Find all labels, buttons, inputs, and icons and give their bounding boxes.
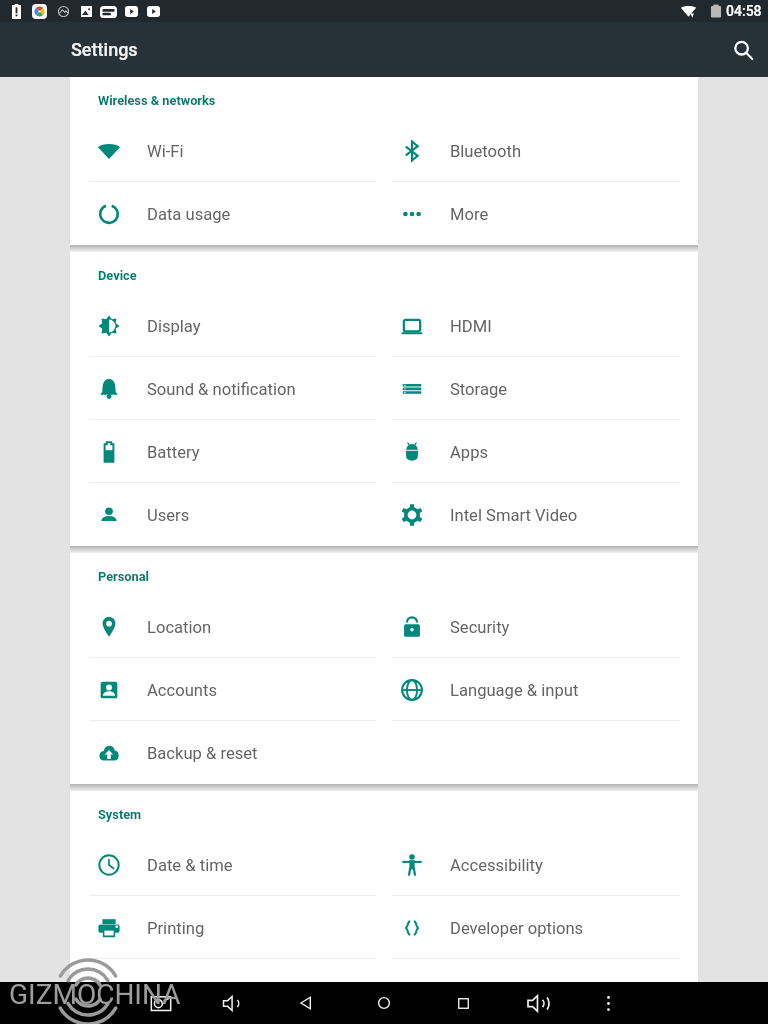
button[interactable]: Accessibility [384, 833, 698, 896]
staticText: GIZMOCHINA [9, 978, 181, 1011]
staticText: Battery [147, 443, 200, 462]
button[interactable]: Accounts [70, 658, 384, 721]
staticText: HDMI [450, 317, 492, 336]
staticText: Backup & reset [147, 744, 258, 763]
staticText: Apps [450, 443, 489, 462]
button[interactable]: Sound & notification [70, 357, 384, 420]
staticText: Location [147, 618, 212, 637]
button[interactable]: Language & input [384, 658, 698, 721]
staticText: Display [147, 317, 201, 336]
staticText: Date & time [147, 856, 233, 875]
button[interactable]: Intel Smart Video [384, 483, 698, 546]
button[interactable]: Display [70, 294, 384, 357]
button[interactable]: More options [587, 982, 629, 1024]
staticText: Data usage [147, 205, 231, 224]
button[interactable]: Volume up [517, 982, 559, 1024]
button[interactable]: More [384, 182, 698, 245]
staticText: Developer options [450, 919, 584, 938]
staticText: Settings [71, 39, 138, 60]
staticText: Accounts [147, 681, 217, 700]
staticText: System [98, 807, 142, 822]
staticText: Device [98, 268, 137, 283]
staticText: Intel Smart Video [450, 506, 578, 525]
button[interactable]: Battery [70, 420, 384, 483]
staticText: Printing [147, 919, 205, 938]
button[interactable]: Bluetooth [384, 119, 698, 182]
button[interactable]: Users [70, 483, 384, 546]
staticText: Wireless & networks [98, 93, 216, 108]
button[interactable]: Location [70, 595, 384, 658]
staticText: Security [450, 618, 510, 637]
staticText: More [450, 205, 489, 224]
button[interactable]: Date & time [70, 833, 384, 896]
button[interactable]: Wi-Fi [70, 119, 384, 182]
staticText: Storage [450, 380, 508, 399]
staticText: Wi-Fi [147, 142, 184, 161]
staticText: Language & input [450, 681, 579, 700]
button[interactable]: Developer options [384, 896, 698, 959]
button[interactable]: Volume down [210, 982, 252, 1024]
button[interactable]: HDMI [384, 294, 698, 357]
staticText: Users [147, 506, 190, 525]
staticText: Accessibility [450, 856, 543, 875]
button[interactable]: Back [285, 982, 327, 1024]
staticText: Sound & notification [147, 380, 296, 399]
button[interactable]: Storage [384, 357, 698, 420]
staticText: Bluetooth [450, 142, 522, 161]
button[interactable]: Data usage [70, 182, 384, 245]
button[interactable]: Apps [384, 420, 698, 483]
button[interactable]: Recents [442, 982, 484, 1024]
button[interactable]: Screenshot [140, 982, 182, 1024]
button[interactable]: Printing [70, 896, 384, 959]
button[interactable]: Search [721, 28, 765, 72]
staticText: 04:58 [726, 3, 762, 19]
staticText: Personal [98, 569, 150, 584]
button[interactable]: Backup & reset [70, 721, 384, 784]
button[interactable]: Security [384, 595, 698, 658]
button[interactable]: Home [363, 982, 405, 1024]
